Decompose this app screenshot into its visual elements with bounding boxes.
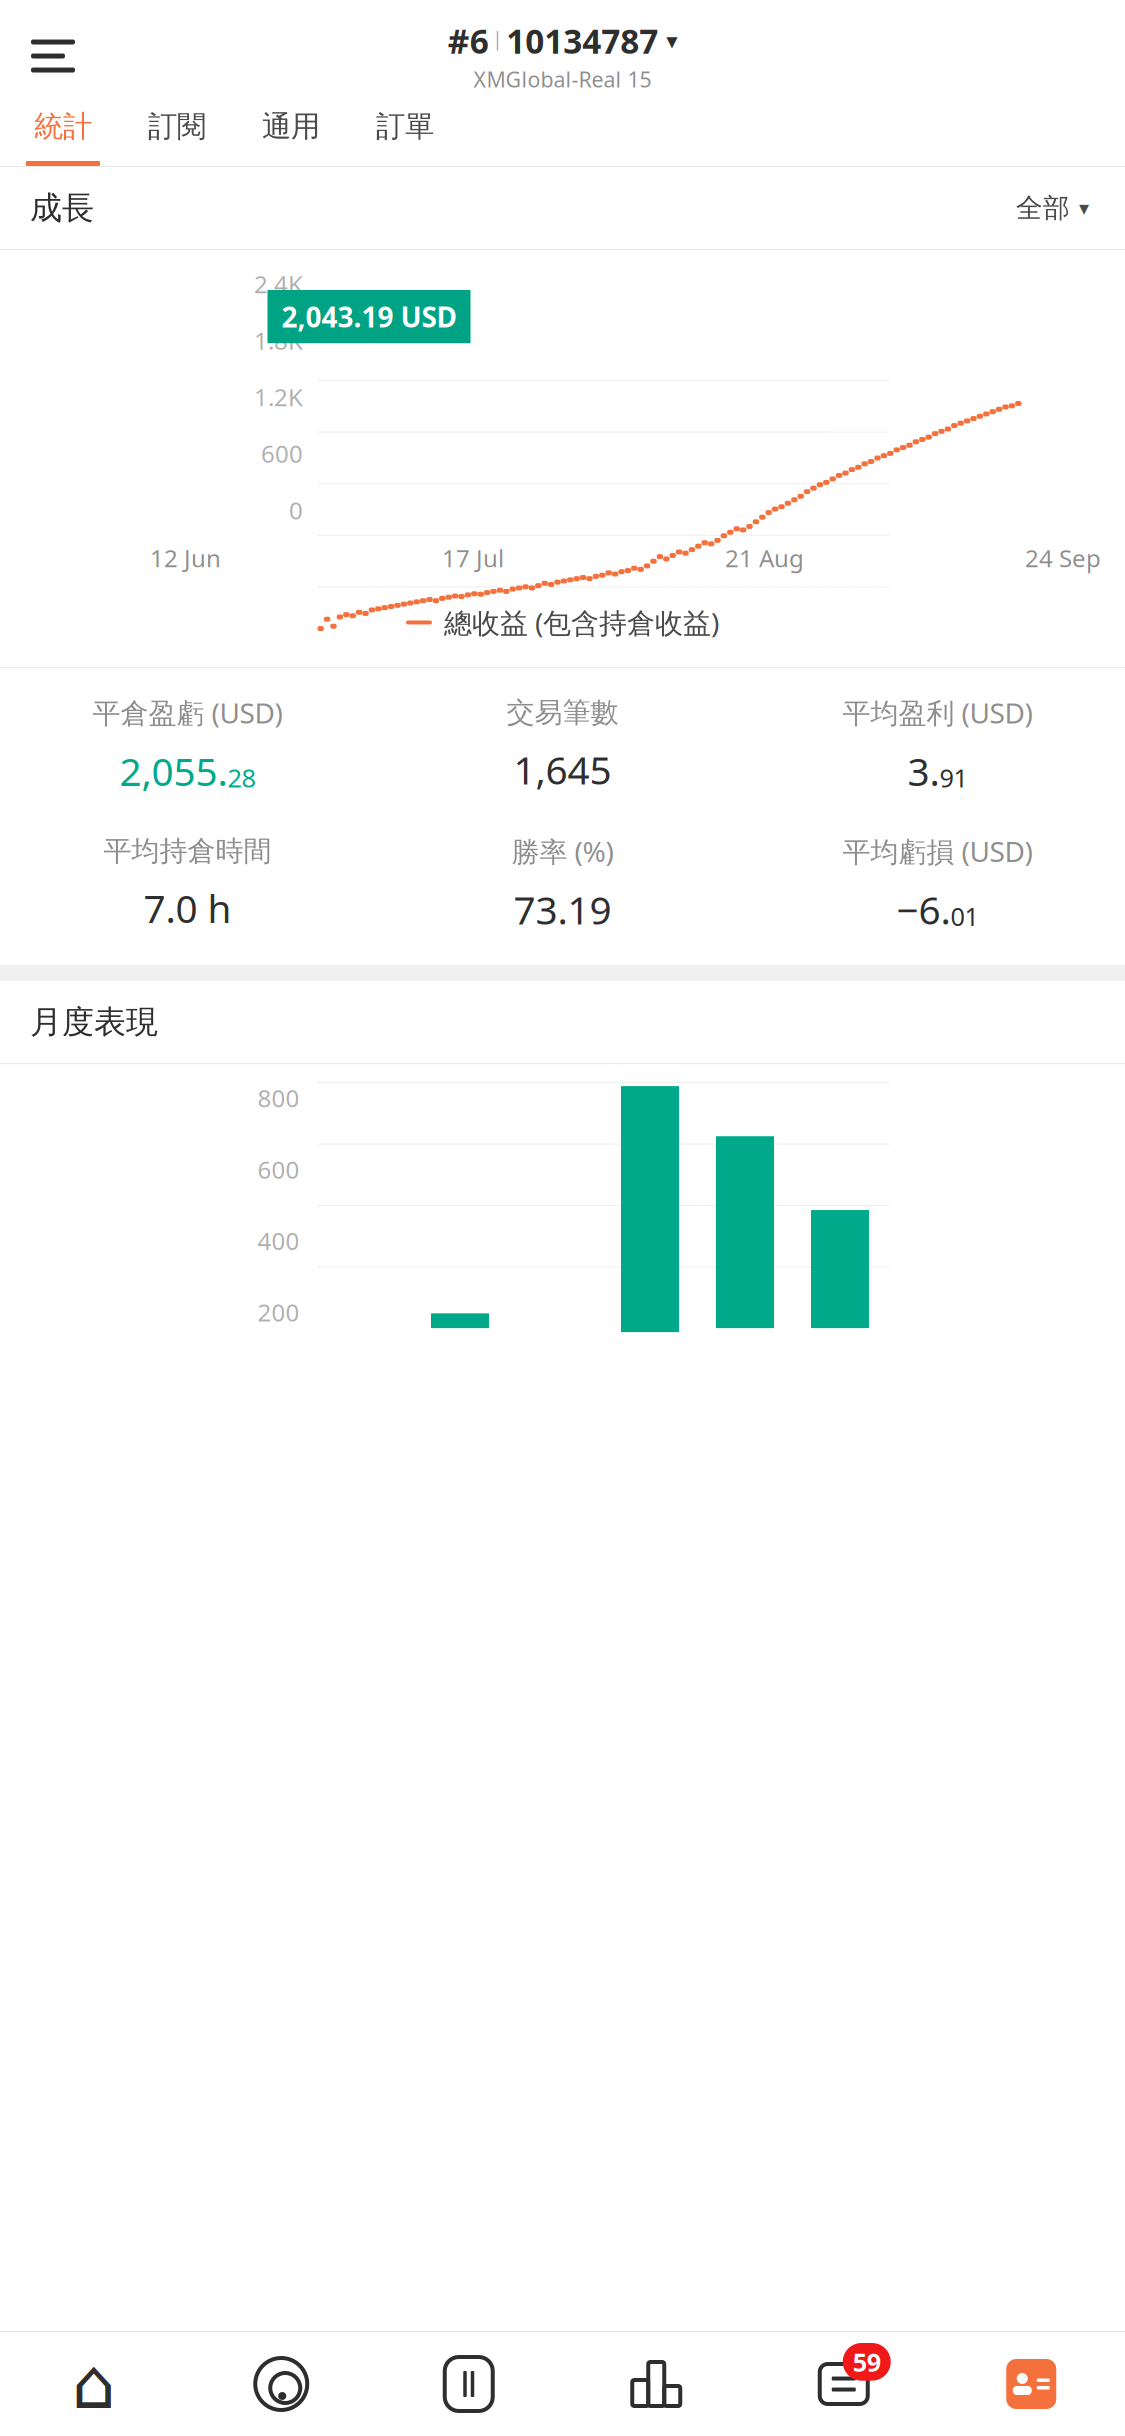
button[interactable]: Signals [187, 2355, 375, 2413]
button[interactable]: Trade [375, 2355, 562, 2413]
staticText: 統計 [34, 108, 92, 144]
staticText: #6 [448, 19, 489, 63]
button[interactable]: Menu [18, 26, 88, 86]
staticText: 勝率 (%) [511, 833, 613, 870]
button[interactable]: 全部 [1010, 186, 1095, 230]
staticText: ▾ [1079, 197, 1089, 219]
staticText: 訂單 [376, 108, 434, 144]
staticText: 1,645 [513, 744, 611, 795]
staticText: 400 [257, 1225, 299, 1257]
staticText: 平均持倉時間 [103, 834, 271, 868]
staticText: 成長 [30, 188, 94, 228]
staticText: ⌂ [72, 2345, 116, 2423]
staticText: 800 [257, 1082, 299, 1114]
button[interactable]: Messages, 59 unread [750, 2355, 937, 2413]
staticText: 2,043.19 USD [281, 298, 456, 335]
button[interactable]: 通用 [234, 92, 348, 166]
staticText: 17 Jul [442, 542, 504, 574]
staticText: 1.8K [254, 324, 303, 356]
staticText: 10134787 [506, 19, 658, 63]
staticText: 73.19 [513, 884, 611, 935]
staticText: 總收益 (包含持倉收益) [444, 604, 719, 641]
staticText: 600 [261, 438, 303, 469]
staticText: 12 Jun [150, 542, 221, 574]
staticText: 全部 [1016, 192, 1070, 224]
staticText: 91 [939, 761, 967, 794]
staticText: 2,055. [119, 745, 227, 796]
staticText: 平均虧損 (USD) [842, 833, 1032, 870]
button[interactable]: 訂閱 [120, 92, 234, 166]
staticText: 01 [950, 899, 978, 933]
staticText: 7.0 h [143, 882, 231, 934]
staticText: 平均盈利 (USD) [842, 694, 1032, 731]
staticText: 21 Aug [725, 542, 804, 574]
staticText: 600 [257, 1153, 299, 1185]
staticText: 通用 [262, 108, 320, 144]
staticText: 24 Sep [1025, 542, 1101, 574]
button[interactable]: 訂單 [348, 92, 462, 166]
staticText: 59 [853, 2345, 881, 2379]
staticText: 月度表現 [30, 1002, 158, 1042]
button[interactable]: #6 [438, 15, 687, 97]
button[interactable]: Charts [562, 2355, 750, 2413]
button[interactable]: Home [0, 2355, 187, 2413]
staticText: −6. [896, 884, 950, 935]
staticText: 平倉盈虧 (USD) [92, 694, 282, 731]
staticText: XMGlobal-Real 15 [473, 65, 651, 93]
staticText: 2.4K [254, 268, 303, 300]
staticText: 3. [907, 745, 939, 796]
button[interactable]: Profile [937, 2355, 1125, 2413]
staticText: ▾ [666, 28, 677, 54]
button[interactable]: 統計 [6, 92, 120, 166]
staticText: 200 [257, 1296, 299, 1328]
staticText: 28 [227, 761, 255, 794]
staticText: 訂閱 [148, 108, 206, 144]
staticText: 1.2K [254, 381, 303, 413]
staticText: 交易筆數 [506, 695, 618, 730]
staticText: 0 [289, 494, 303, 526]
